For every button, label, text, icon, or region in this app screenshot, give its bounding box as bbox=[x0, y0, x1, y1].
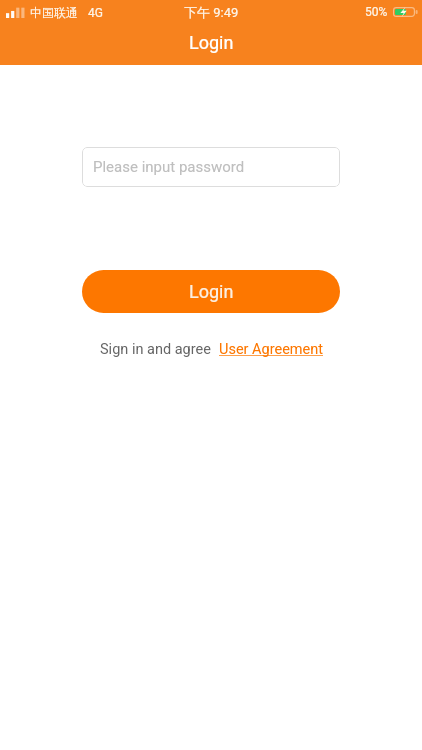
button[interactable]: Login bbox=[82, 270, 340, 313]
staticText: 中国联通 bbox=[30, 5, 78, 20]
other: Battery 50 percent, charging bbox=[393, 7, 418, 17]
staticText: Login bbox=[189, 32, 234, 53]
staticText: Login bbox=[189, 281, 234, 302]
staticText: Sign in and agree bbox=[100, 341, 211, 358]
button[interactable]: User Agreement bbox=[219, 341, 323, 358]
button[interactable]: Please input password bbox=[82, 147, 340, 187]
staticText: 50% bbox=[365, 5, 388, 19]
staticText: 4G bbox=[88, 6, 103, 20]
staticText: 下午 9:49 bbox=[184, 4, 239, 20]
other: Cellular signal strength bbox=[6, 7, 25, 18]
staticText: Please input password bbox=[93, 158, 245, 176]
